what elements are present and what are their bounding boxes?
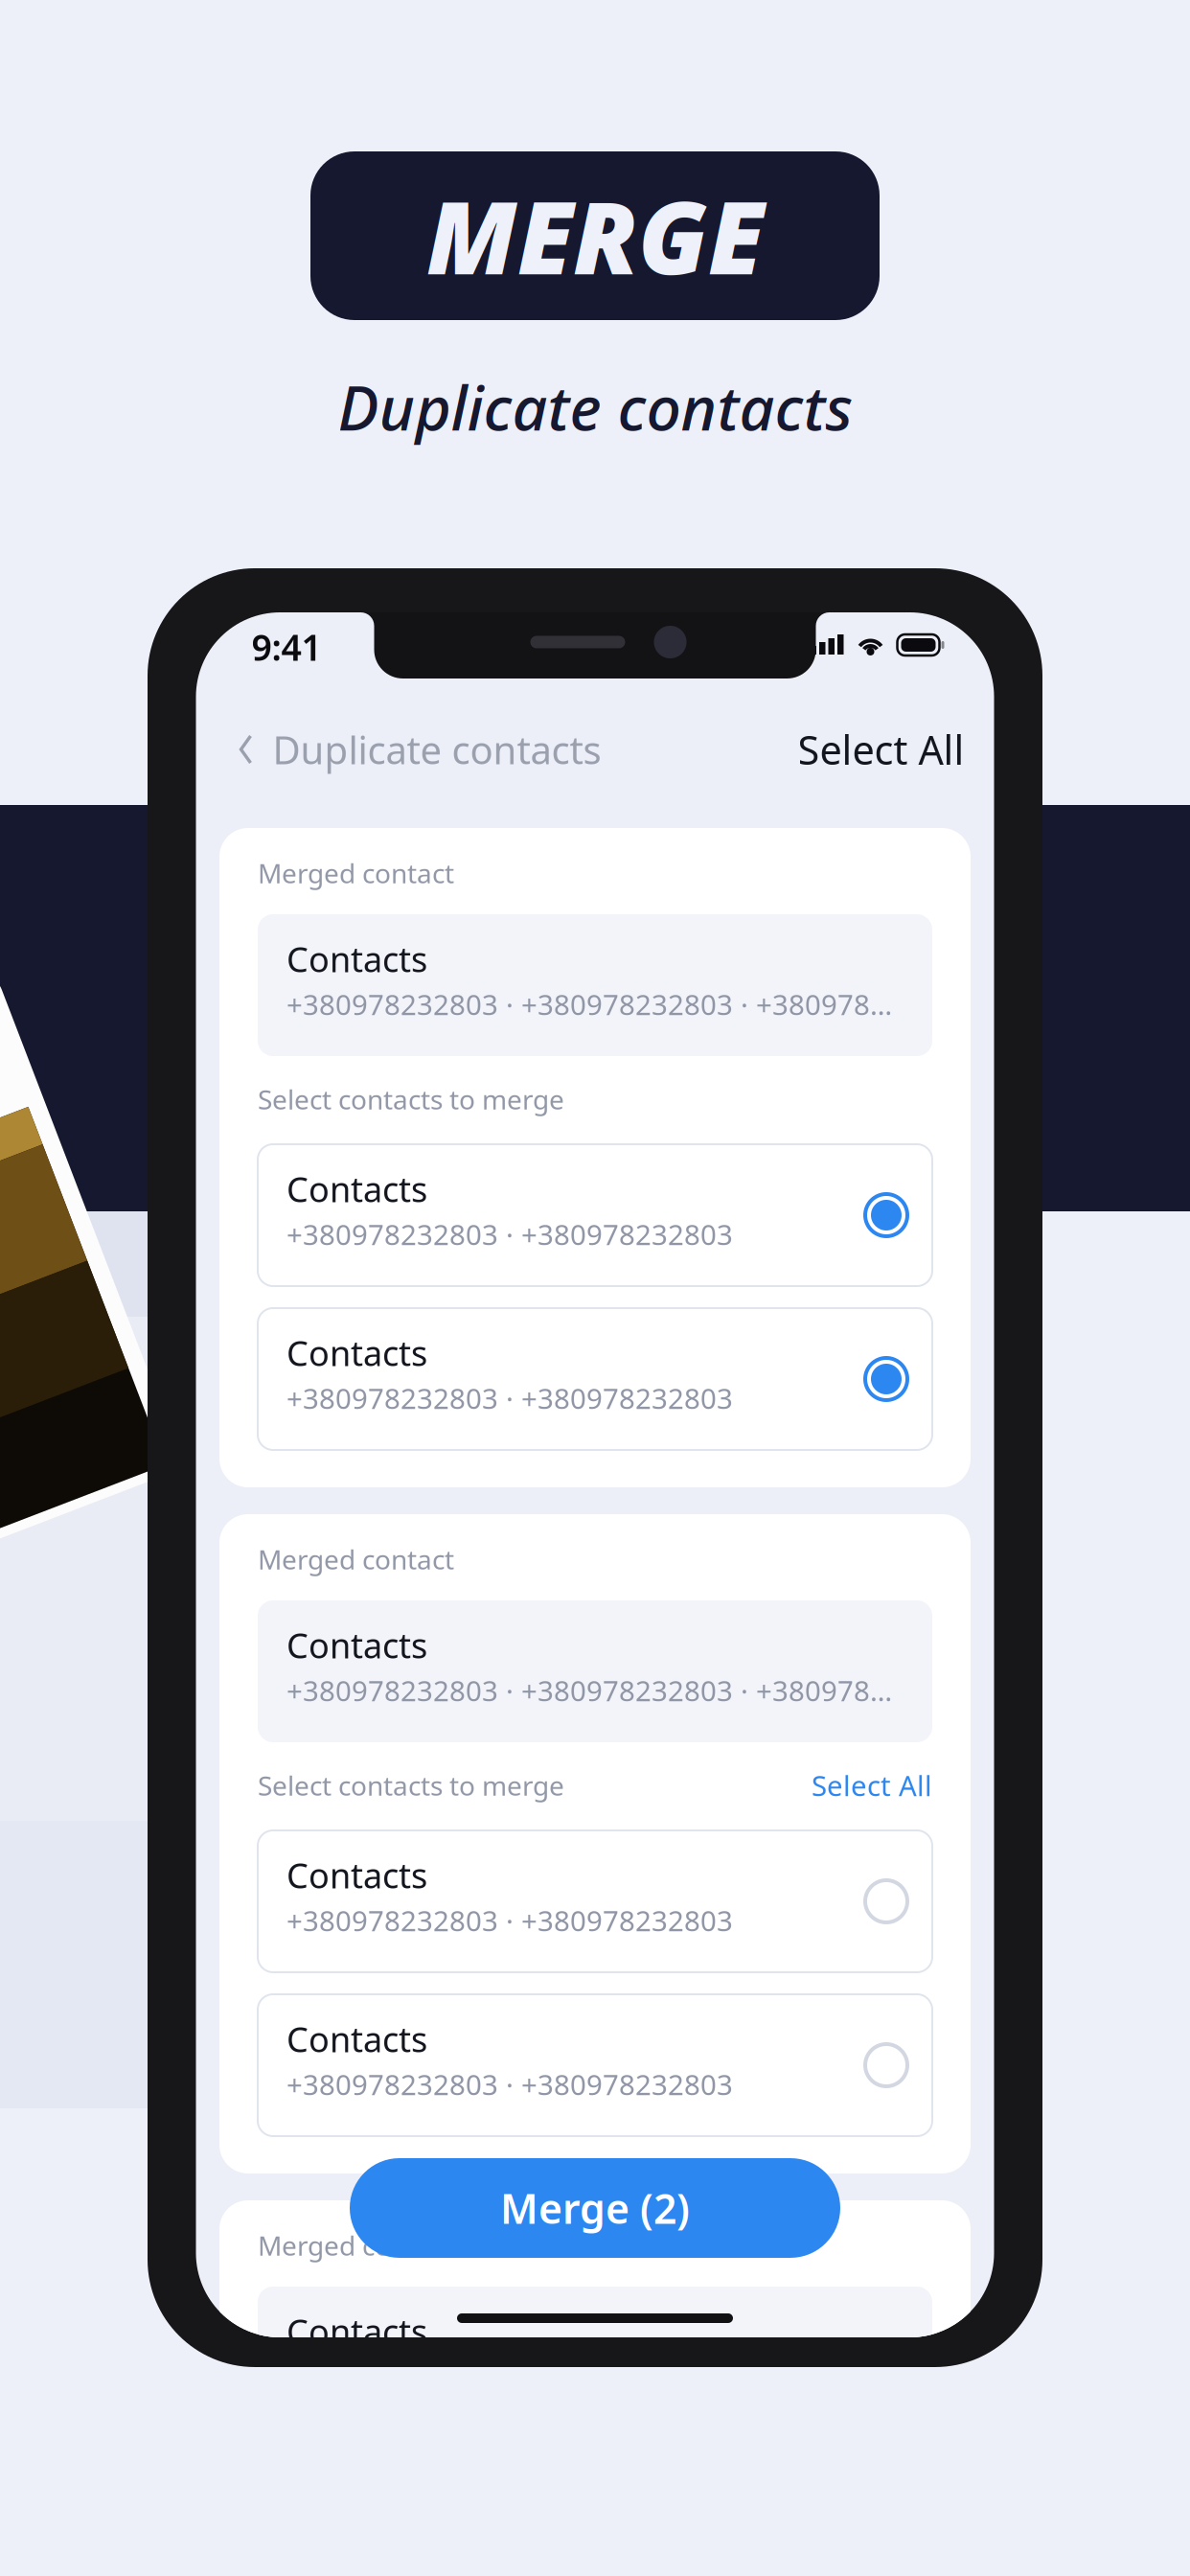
staticText: Merge (2) [500, 2181, 690, 2235]
staticText: +380978232803 · +380978232803 [286, 1902, 733, 1939]
staticText: +380978232803 · +380978232803 [286, 2066, 733, 2103]
staticText: Contacts [286, 1852, 427, 1898]
button[interactable]: Contacts [258, 1994, 932, 2136]
button[interactable]: Duplicate contacts [238, 724, 601, 775]
staticText: Merged contact [258, 2228, 454, 2263]
staticText: +380978232803 · +380978232803 [286, 1216, 733, 1253]
staticText: Duplicate contacts [338, 366, 852, 448]
staticText: +380978232803 · +380978232803 · +380978… [286, 1672, 892, 1709]
staticText: Select contacts to merge [258, 1768, 564, 1803]
staticText: Select All [812, 1767, 932, 1804]
button[interactable]: Contacts [258, 1144, 932, 1286]
staticText: Contacts [286, 2016, 427, 2062]
staticText: Contacts [286, 1330, 427, 1376]
staticText: Contacts [286, 1166, 427, 1212]
staticText: Contacts [286, 936, 427, 982]
button[interactable]: Contacts [258, 1830, 932, 1972]
button[interactable]: Select All [812, 1767, 932, 1804]
staticText: Duplicate contacts [273, 724, 601, 775]
staticText: Select contacts to merge [258, 1081, 564, 1117]
staticText: +380978232803 · +380978232803 · +380978… [286, 2358, 892, 2395]
staticText: MERGE [426, 170, 764, 302]
staticText: Merged contact [258, 1541, 454, 1577]
button[interactable]: Contacts [258, 1308, 932, 1450]
staticText: Merged contact [258, 855, 454, 891]
button[interactable]: Merge (2) [350, 2158, 840, 2258]
button[interactable]: Select All [798, 723, 964, 776]
staticText: Select All [798, 723, 964, 776]
staticText: +380978232803 · +380978232803 [286, 1379, 733, 1417]
staticText: Contacts [286, 1622, 427, 1668]
staticText: +380978232803 · +380978232803 · +380978… [286, 986, 892, 1023]
staticText: 9:41 [252, 623, 321, 671]
staticText: Contacts [286, 2308, 427, 2354]
